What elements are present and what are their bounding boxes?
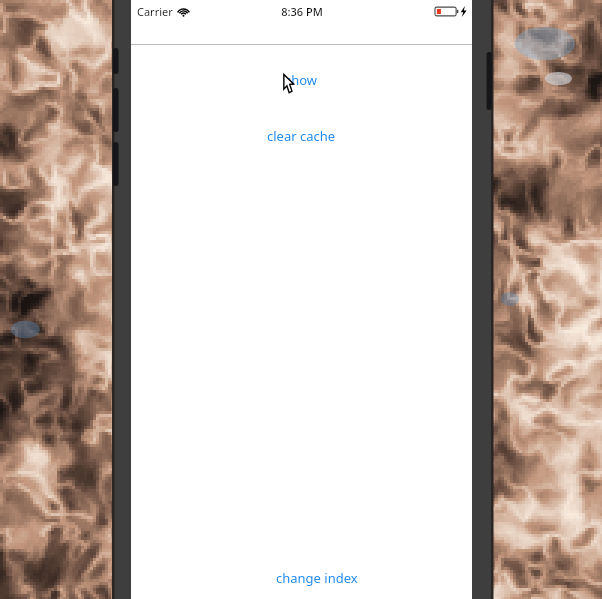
other: Pointer — [283, 74, 297, 93]
button[interactable]: change index — [276, 567, 358, 589]
staticText: clear cache — [267, 127, 336, 145]
staticText: 8:36 PM — [281, 4, 323, 19]
staticText: Carrier — [137, 4, 173, 19]
button[interactable]: clear cache — [131, 126, 472, 146]
staticText: show — [285, 71, 318, 89]
button[interactable]: show — [131, 70, 472, 90]
staticText: change index — [276, 569, 358, 587]
